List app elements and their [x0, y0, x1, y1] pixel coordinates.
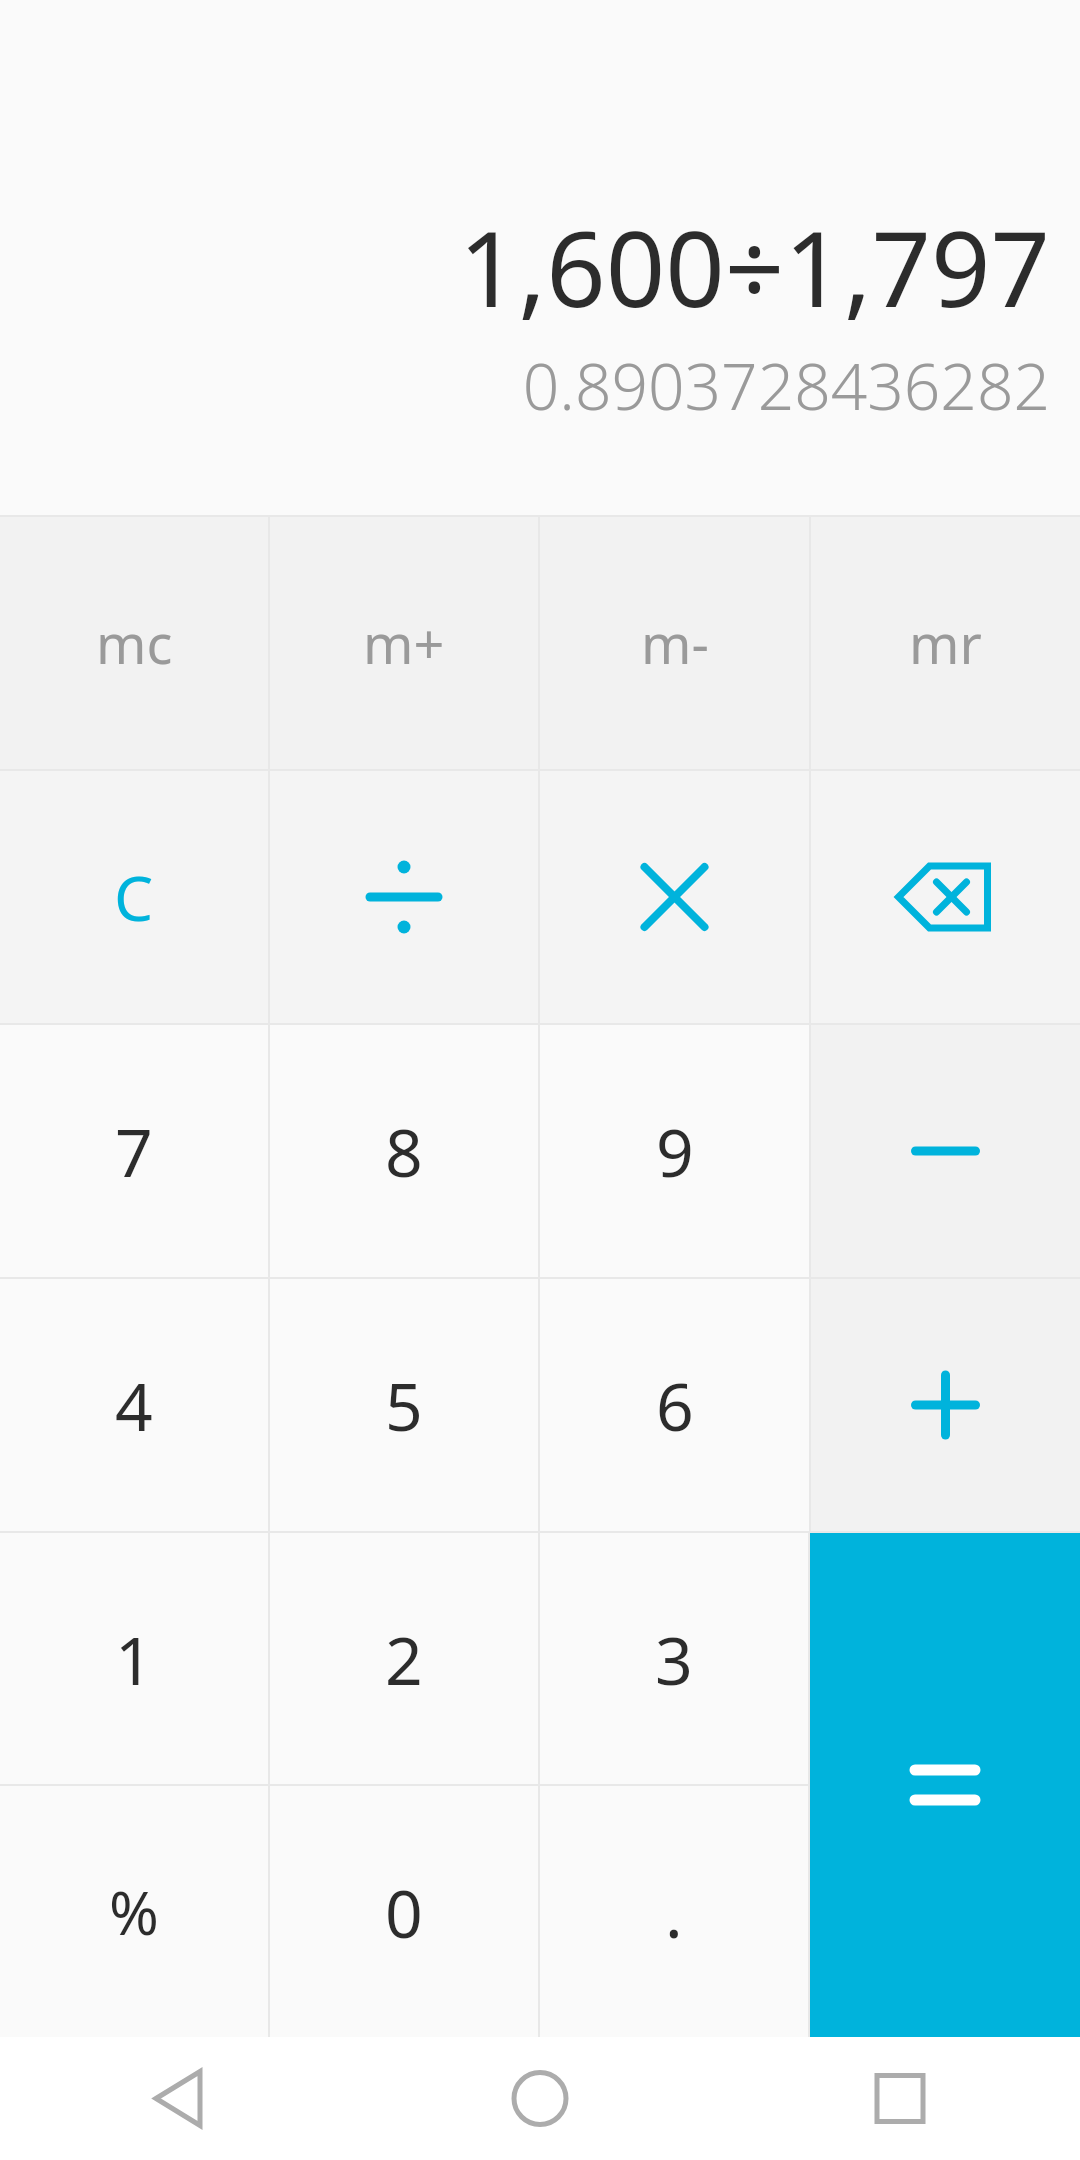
staticText: 9 — [656, 1106, 694, 1196]
staticText: m+ — [363, 606, 445, 680]
button[interactable]: 7 — [0, 1025, 268, 1277]
staticText: 4 — [115, 1360, 153, 1450]
staticText: 7 — [115, 1106, 153, 1196]
button[interactable]: Plus — [811, 1279, 1080, 1531]
staticText: 0 — [385, 1867, 423, 1957]
staticText: m- — [641, 606, 709, 680]
staticText: mr — [909, 606, 982, 680]
staticText: 3 — [655, 1614, 693, 1704]
staticText: 6 — [656, 1360, 694, 1450]
button[interactable]: . — [540, 1786, 808, 2037]
button[interactable]: 2 — [270, 1533, 538, 1784]
button[interactable]: Recents — [720, 2037, 1080, 2160]
staticText: 2 — [385, 1614, 423, 1704]
button[interactable]: 4 — [0, 1279, 268, 1531]
staticText: 5 — [385, 1360, 423, 1450]
staticText: 0.8903728436282 — [0, 342, 1050, 429]
staticText: 8 — [385, 1106, 423, 1196]
staticText: % — [109, 1871, 159, 1953]
staticText: 1,600÷1,797 — [0, 196, 1050, 338]
button[interactable]: Minus — [811, 1025, 1080, 1277]
button[interactable]: Multiply — [540, 771, 809, 1023]
button[interactable]: m- — [540, 517, 809, 769]
button[interactable]: 8 — [270, 1025, 538, 1277]
button[interactable]: Equals — [810, 1533, 1080, 2037]
button[interactable]: 3 — [540, 1533, 808, 1784]
staticText: 1 — [115, 1614, 153, 1704]
button[interactable]: 5 — [270, 1279, 538, 1531]
button[interactable]: m+ — [270, 517, 538, 769]
button[interactable]: mr — [811, 517, 1080, 769]
staticText: C — [114, 855, 154, 939]
button[interactable]: 6 — [540, 1279, 809, 1531]
button[interactable]: Back — [0, 2037, 360, 2160]
button[interactable]: C — [0, 771, 268, 1023]
staticText: mc — [96, 606, 173, 680]
button[interactable]: % — [0, 1786, 268, 2037]
button[interactable]: 9 — [540, 1025, 809, 1277]
button[interactable]: mc — [0, 517, 268, 769]
button[interactable]: Home — [360, 2037, 720, 2160]
staticText: . — [665, 1867, 683, 1957]
button[interactable]: Backspace — [811, 771, 1080, 1023]
button[interactable]: 1 — [0, 1533, 268, 1784]
button[interactable]: Divide — [270, 771, 538, 1023]
button[interactable]: 0 — [270, 1786, 538, 2037]
